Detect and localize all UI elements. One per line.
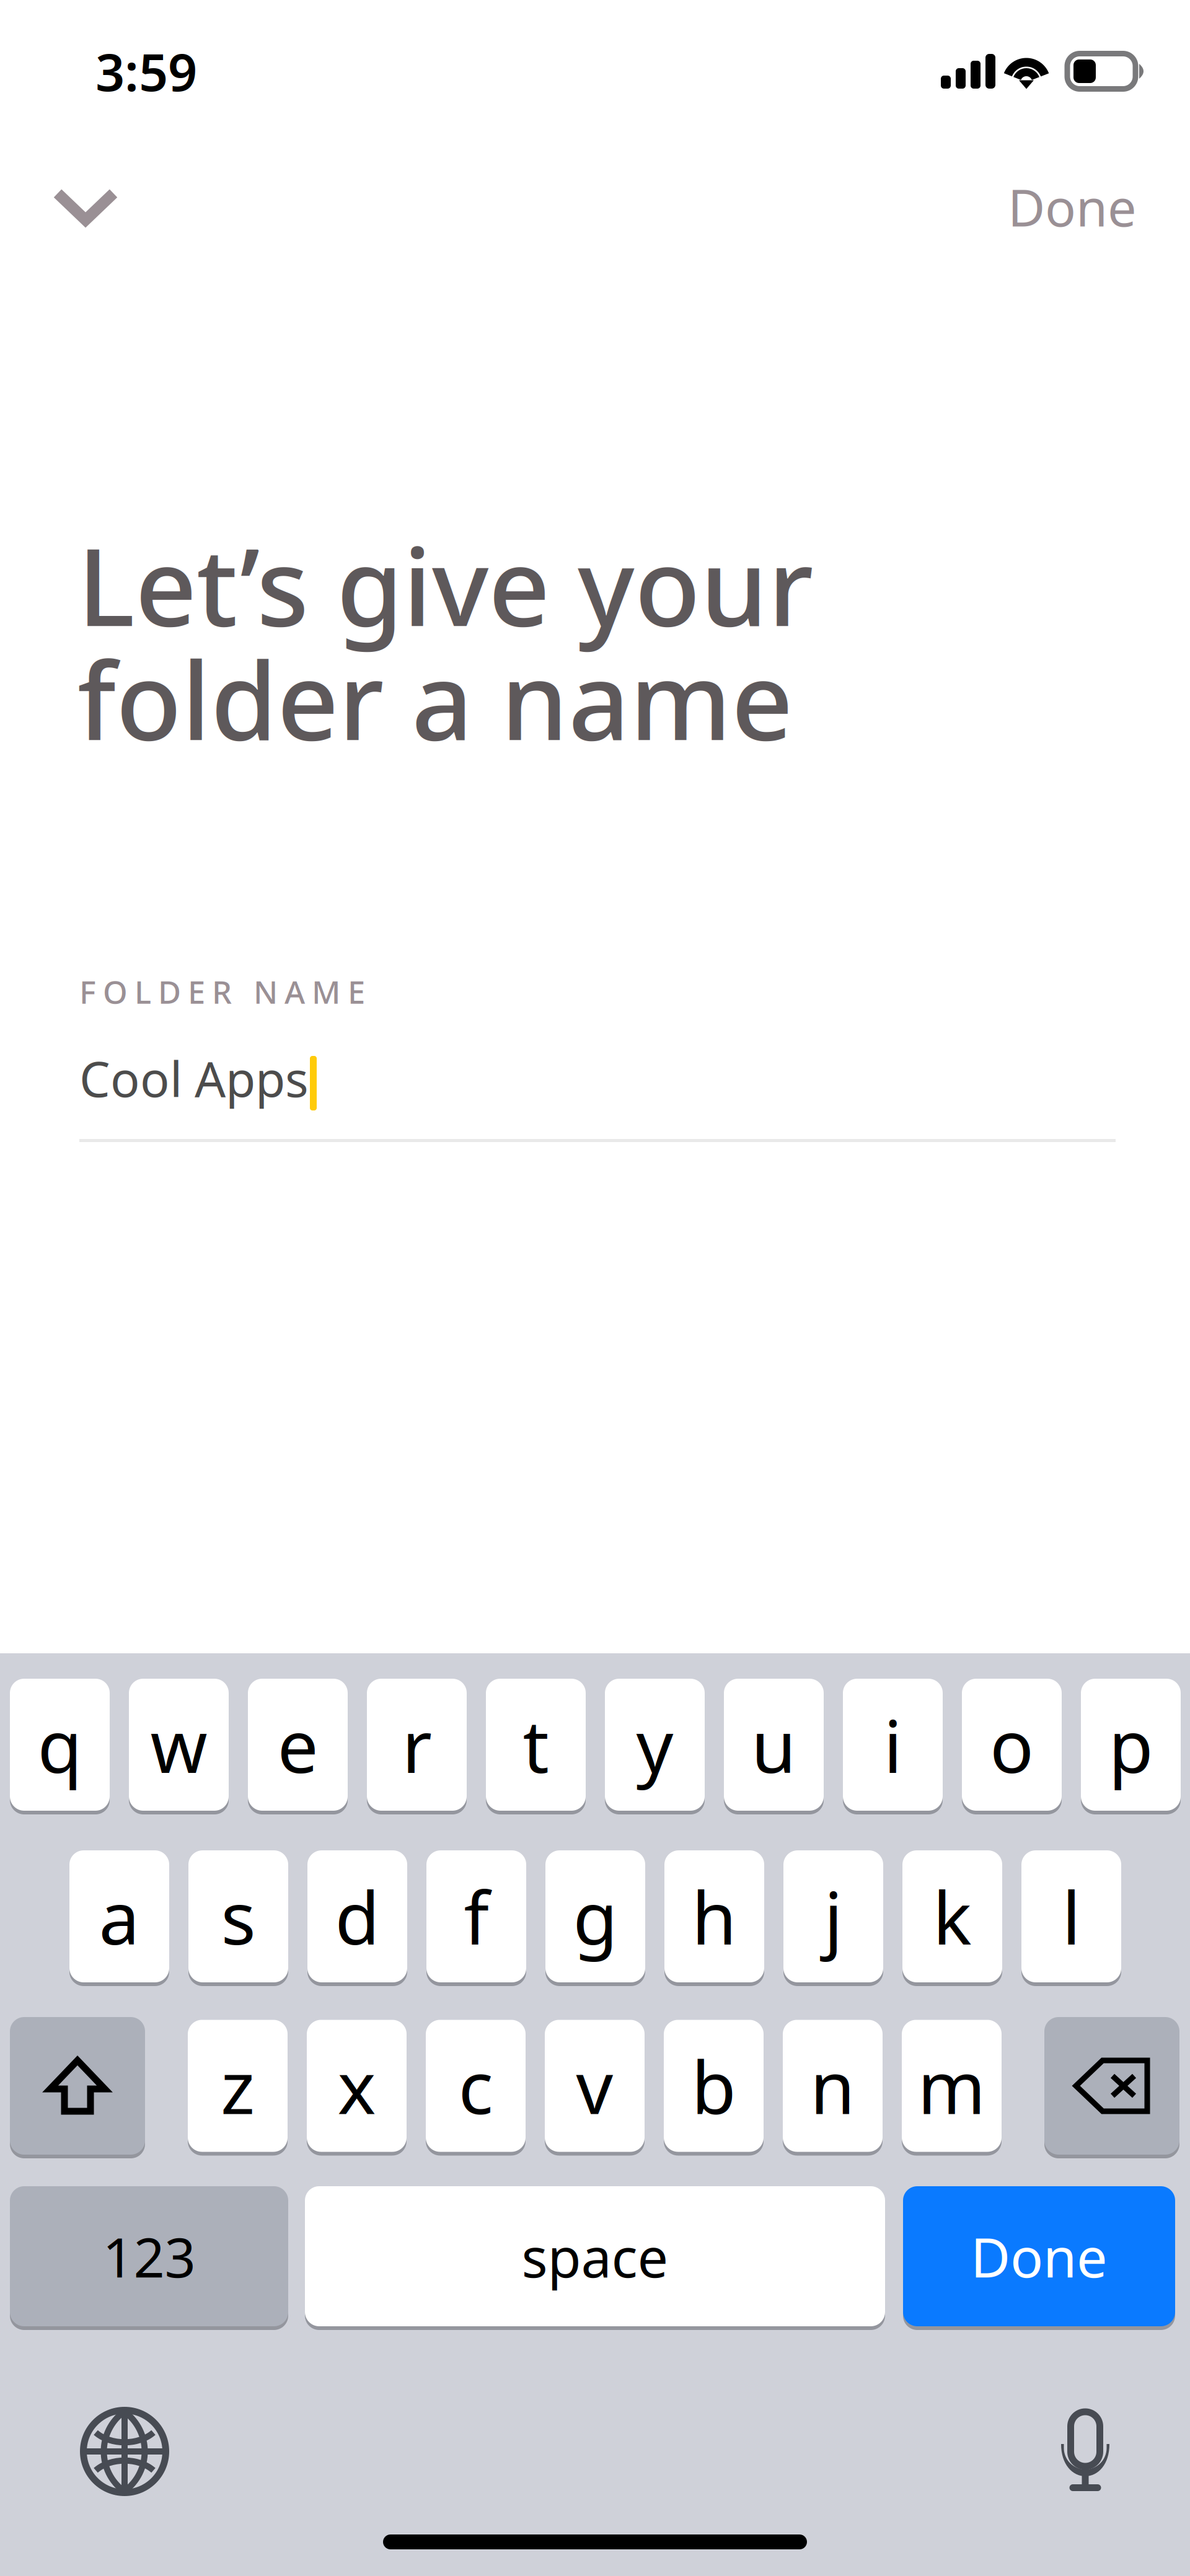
staticText: Let’s give your bbox=[77, 513, 813, 656]
staticText: folder a name bbox=[77, 627, 793, 770]
button[interactable]: n bbox=[783, 2020, 883, 2152]
button[interactable]: Dictation bbox=[1039, 2405, 1132, 2498]
button[interactable]: b bbox=[664, 2020, 764, 2152]
button[interactable]: f bbox=[426, 1850, 526, 1982]
staticText: Done bbox=[1008, 173, 1137, 241]
button[interactable]: o bbox=[962, 1679, 1062, 1811]
button[interactable]: space bbox=[305, 2186, 885, 2326]
button[interactable]: Done bbox=[903, 2186, 1175, 2326]
staticText: e bbox=[277, 1696, 318, 1793]
staticText: t bbox=[523, 1696, 549, 1793]
button[interactable]: i bbox=[843, 1679, 943, 1811]
button[interactable]: 123 bbox=[10, 2186, 288, 2326]
staticText: i bbox=[884, 1696, 902, 1793]
button[interactable]: y bbox=[605, 1679, 705, 1811]
staticText: Cool Apps bbox=[79, 1046, 309, 1110]
staticText: o bbox=[990, 1696, 1034, 1793]
button[interactable]: Delete bbox=[1044, 2017, 1179, 2155]
staticText: s bbox=[221, 1868, 256, 1965]
staticText: g bbox=[573, 1868, 618, 1965]
staticText: c bbox=[458, 2038, 493, 2134]
staticText: u bbox=[751, 1696, 796, 1793]
staticText: l bbox=[1062, 1868, 1081, 1965]
staticText: j bbox=[824, 1868, 843, 1965]
button[interactable]: r bbox=[367, 1679, 467, 1811]
button[interactable]: Done bbox=[1008, 157, 1137, 256]
staticText: h bbox=[692, 1868, 737, 1965]
staticText: a bbox=[99, 1868, 140, 1965]
button[interactable]: s bbox=[188, 1850, 288, 1982]
staticText: z bbox=[221, 2038, 255, 2134]
button[interactable]: c bbox=[426, 2020, 526, 2152]
button[interactable]: p bbox=[1081, 1679, 1181, 1811]
staticText: n bbox=[810, 2038, 855, 2134]
button[interactable]: u bbox=[724, 1679, 824, 1811]
button[interactable]: x bbox=[307, 2020, 407, 2152]
button[interactable]: t bbox=[486, 1679, 586, 1811]
staticText: f bbox=[464, 1868, 489, 1965]
staticText: k bbox=[933, 1868, 972, 1965]
button[interactable]: v bbox=[545, 2020, 645, 2152]
button[interactable]: d bbox=[307, 1850, 407, 1982]
staticText: 3:59 bbox=[95, 37, 197, 105]
staticText: Done bbox=[971, 2220, 1108, 2292]
staticText: q bbox=[37, 1696, 82, 1793]
button[interactable]: z bbox=[188, 2020, 288, 2152]
button[interactable]: k bbox=[902, 1850, 1002, 1982]
button[interactable]: m bbox=[902, 2020, 1002, 2152]
button[interactable]: Shift bbox=[10, 2017, 145, 2155]
button[interactable]: Next keyboard bbox=[78, 2405, 171, 2498]
staticText: w bbox=[150, 1696, 207, 1793]
staticText: y bbox=[636, 1696, 673, 1793]
button[interactable]: q bbox=[10, 1679, 110, 1811]
staticText: v bbox=[576, 2038, 613, 2134]
button[interactable]: l bbox=[1021, 1850, 1121, 1982]
staticText: p bbox=[1108, 1696, 1153, 1793]
staticText: 123 bbox=[103, 2220, 196, 2292]
staticText: FOLDER NAME bbox=[79, 971, 365, 1012]
staticText: b bbox=[691, 2038, 736, 2134]
staticText: r bbox=[402, 1696, 432, 1793]
button[interactable]: w bbox=[129, 1679, 229, 1811]
button[interactable]: a bbox=[69, 1850, 169, 1982]
staticText: x bbox=[337, 2038, 376, 2134]
staticText: d bbox=[335, 1868, 380, 1965]
button[interactable]: h bbox=[664, 1850, 764, 1982]
button[interactable]: e bbox=[248, 1679, 348, 1811]
staticText: m bbox=[918, 2038, 986, 2134]
button[interactable]: j bbox=[783, 1850, 883, 1982]
staticText: space bbox=[522, 2220, 668, 2292]
button[interactable]: g bbox=[545, 1850, 645, 1982]
button[interactable]: Collapse bbox=[29, 157, 143, 256]
